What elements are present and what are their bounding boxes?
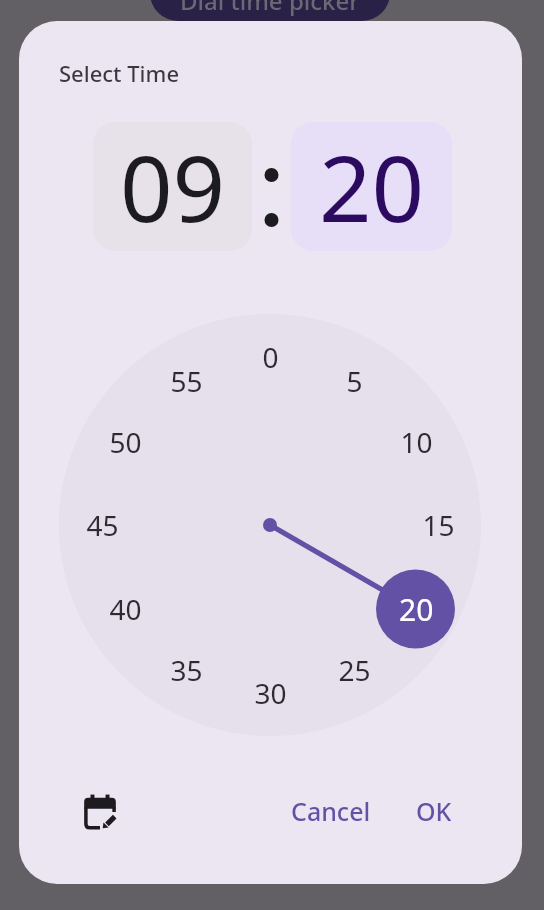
staticText: 09 xyxy=(120,124,226,249)
staticText: 10 xyxy=(400,423,433,461)
staticText: 50 xyxy=(109,423,142,461)
staticText: OK xyxy=(416,794,452,828)
staticText: 45 xyxy=(86,506,119,544)
staticText: 35 xyxy=(170,651,203,689)
staticText: 40 xyxy=(109,590,142,628)
button[interactable]: Cancel xyxy=(286,790,376,832)
staticText: 20 xyxy=(399,589,434,630)
staticText: 0 xyxy=(262,338,279,376)
button[interactable]: 20 xyxy=(291,122,452,251)
staticText: 20 xyxy=(319,124,425,249)
staticText: 55 xyxy=(170,362,203,400)
staticText: 15 xyxy=(422,506,455,544)
button[interactable]: OK xyxy=(404,790,464,832)
button[interactable]: Dial time picker xyxy=(150,0,390,21)
staticText: Select Time xyxy=(59,58,180,88)
staticText: 25 xyxy=(338,651,371,689)
staticText: 5 xyxy=(346,362,363,400)
staticText: 30 xyxy=(254,674,287,712)
staticText: Dial time picker xyxy=(180,0,360,17)
staticText: Cancel xyxy=(291,794,371,828)
button[interactable] xyxy=(76,788,124,836)
button[interactable]: 09 xyxy=(93,122,252,251)
